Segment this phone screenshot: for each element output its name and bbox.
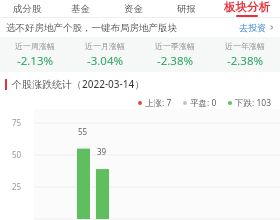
button[interactable]: 板块分析 <box>213 0 280 17</box>
staticText: 近一年涨幅 <box>225 41 265 51</box>
staticText: 个股涨跌统计（2022-03-14） <box>12 77 145 91</box>
button[interactable]: 下跌: 103 <box>228 97 272 109</box>
staticText: 55 <box>78 126 88 137</box>
staticText: -2.38% <box>157 53 194 69</box>
staticText: 平盘: 0 <box>190 97 217 109</box>
staticText: 75 <box>12 117 22 128</box>
other: Go invest <box>269 25 274 30</box>
staticText: 板块分析 <box>224 0 270 14</box>
staticText: 39 <box>97 146 107 157</box>
staticText: 选不好房地产个股，一键布局房地产版块 <box>6 22 177 34</box>
button[interactable]: 平盘: 0 <box>183 97 217 109</box>
staticText: -2.38% <box>227 53 264 69</box>
staticText: 去投资 <box>239 22 266 33</box>
button[interactable]: 近一周涨幅 <box>0 37 70 72</box>
button[interactable]: 成分股 <box>0 0 54 17</box>
button[interactable]: 选不好房地产个股，一键布局房地产版块 <box>0 18 280 37</box>
staticText: 50 <box>12 149 22 160</box>
button[interactable]: 基金 <box>54 0 107 17</box>
staticText: 近一月涨幅 <box>85 41 125 51</box>
button[interactable]: 近一年涨幅 <box>210 37 280 72</box>
staticText: 基金 <box>71 3 90 15</box>
button[interactable]: 上涨: 7 <box>138 97 172 109</box>
staticText: 近一季涨幅 <box>155 41 195 51</box>
staticText: 上涨: 7 <box>145 97 172 109</box>
button[interactable]: 近一月涨幅 <box>70 37 140 72</box>
button[interactable]: 资金 <box>107 0 160 17</box>
button[interactable]: 近一季涨幅 <box>140 37 210 72</box>
staticText: 25 <box>12 181 22 192</box>
button[interactable]: 研报 <box>160 0 213 17</box>
staticText: 研报 <box>177 3 196 15</box>
staticText: 成分股 <box>13 3 42 15</box>
staticText: 资金 <box>124 3 143 15</box>
staticText: -3.04% <box>87 53 124 69</box>
staticText: -2.13% <box>17 53 54 69</box>
staticText: 下跌: 103 <box>235 97 272 109</box>
staticText: 近一周涨幅 <box>15 41 55 51</box>
